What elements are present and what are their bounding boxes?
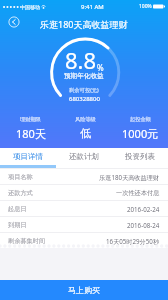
staticText: 马上购买 (68, 285, 100, 295)
staticText: 起投金额 (130, 116, 151, 123)
staticText: 项目名称 (8, 173, 33, 181)
button[interactable]: 投资列表 (112, 148, 168, 165)
staticText: 投资列表 (125, 152, 155, 161)
staticText: 乐逛180天高收益理财 (99, 173, 160, 181)
staticText: 16天05时29分50秒 (106, 237, 160, 245)
button[interactable]: 返回 (6, 14, 22, 30)
staticText: % (97, 62, 104, 73)
staticText: 低 (80, 126, 91, 140)
staticText: 项目详情 (13, 152, 43, 161)
staticText: 1000元 (122, 126, 159, 141)
staticText: 一次性还本付息 (116, 189, 160, 197)
staticText: 8.8 (65, 45, 97, 75)
button[interactable]: 项目详情 (0, 148, 56, 165)
staticText: 乐逛180天高收益理财 (40, 18, 128, 30)
staticText: 到期日 (8, 221, 27, 229)
button[interactable]: 还款计划 (56, 148, 112, 165)
staticText: 180天 (16, 126, 46, 141)
staticText: 风险等级 (75, 116, 96, 123)
staticText: 剩余可投(元) (69, 86, 99, 93)
staticText: 还款计划 (69, 152, 99, 161)
staticText: 预期年化收益 (64, 72, 104, 80)
staticText: 100% (139, 3, 152, 10)
staticText: 中国移动 (20, 4, 40, 10)
staticText: 2016-08-24 (127, 221, 160, 229)
button[interactable]: 马上购买 (0, 280, 168, 300)
staticText: 还款方式 (8, 189, 33, 197)
staticText: 2016-02-24 (127, 205, 160, 213)
staticText: 680328800 (69, 95, 100, 103)
staticText: 剩余募集时间 (8, 237, 46, 245)
staticText: 9:41 AM (81, 3, 104, 11)
staticText: 起息日 (8, 205, 27, 213)
staticText: 理财期限 (20, 116, 41, 123)
